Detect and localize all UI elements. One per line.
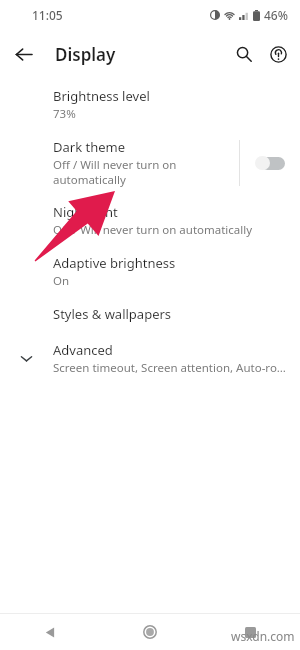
staticText: Screen timeout, Screen attention, Auto-r… <box>53 360 290 376</box>
staticText: Advanced <box>53 341 113 359</box>
button[interactable]: Brightness level <box>0 87 300 122</box>
button[interactable]: Back <box>0 614 100 650</box>
staticText: Styles & wallpapers <box>53 305 172 323</box>
button[interactable]: Back <box>9 40 37 68</box>
staticText: 46% <box>264 7 288 23</box>
button[interactable]: Styles & wallpapers <box>0 305 300 323</box>
button[interactable]: Recents <box>200 614 300 650</box>
staticText: Night light <box>53 203 118 221</box>
staticText: 73% <box>53 106 76 122</box>
staticText: Brightness level <box>53 87 150 105</box>
staticText: On <box>53 273 70 289</box>
staticText: Off / Will never turn on automatically <box>53 157 177 187</box>
button[interactable]: Help <box>264 40 292 68</box>
staticText: Adaptive brightness <box>53 254 176 272</box>
button[interactable]: Home <box>100 614 200 650</box>
button[interactable]: Adaptive brightness <box>0 254 300 289</box>
button[interactable]: Dark theme <box>0 138 239 187</box>
staticText: Dark theme <box>53 138 126 156</box>
button[interactable]: Night light <box>0 203 300 238</box>
button[interactable]: Advanced <box>0 341 300 376</box>
button[interactable]: Search <box>230 40 258 68</box>
button[interactable]: Dark theme toggle <box>240 140 300 186</box>
staticText: Off / Will never turn on automatically <box>53 222 253 238</box>
staticText: wsxdn.com <box>231 628 295 644</box>
staticText: 11:05 <box>32 7 63 23</box>
staticText: Display <box>55 43 116 66</box>
